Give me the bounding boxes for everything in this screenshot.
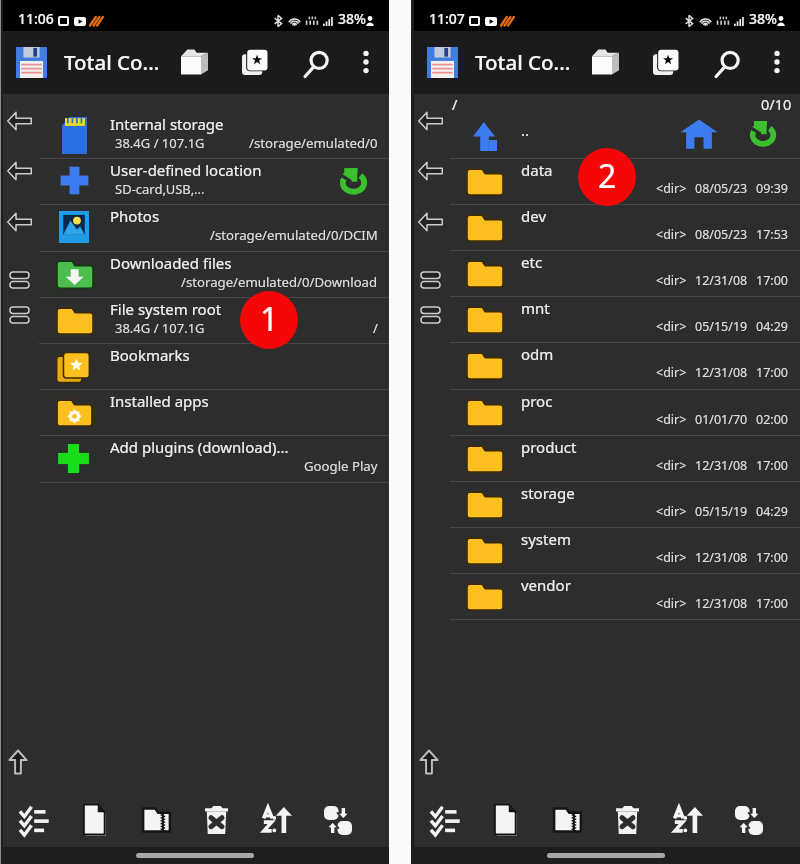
staticText: Total Co...: [64, 48, 160, 76]
button[interactable]: [411, 389, 800, 435]
button[interactable]: Open folder: [592, 49, 619, 75]
button[interactable]: Refresh: [748, 118, 778, 148]
staticText: <dir>: [656, 503, 687, 520]
button[interactable]: [411, 112, 800, 158]
button[interactable]: [411, 481, 800, 527]
button[interactable]: Sort: [263, 807, 292, 833]
button[interactable]: Zip: [142, 807, 171, 833]
staticText: proc: [521, 391, 553, 411]
button[interactable]: Zip: [553, 807, 582, 833]
staticText: 08/05/23: [695, 226, 748, 243]
button[interactable]: Search: [714, 51, 740, 77]
staticText: Add plugins (download)...: [110, 437, 289, 457]
button[interactable]: Search: [303, 51, 329, 77]
button[interactable]: Move: [324, 806, 352, 835]
button[interactable]: [411, 342, 800, 388]
staticText: 1: [260, 297, 279, 341]
staticText: User-defined location: [110, 160, 262, 180]
staticText: 17:00: [756, 364, 788, 381]
button[interactable]: New file: [494, 804, 517, 836]
button[interactable]: [411, 573, 800, 619]
button[interactable]: [0, 112, 389, 158]
staticText: 17:53: [756, 226, 788, 243]
button[interactable]: Refresh: [338, 165, 369, 196]
staticText: 12/31/08: [695, 364, 748, 381]
staticText: Installed apps: [110, 391, 209, 411]
staticText: Bookmarks: [110, 345, 190, 365]
button[interactable]: [411, 527, 800, 573]
staticText: 05/15/19: [695, 503, 748, 520]
button[interactable]: [411, 158, 800, 204]
staticText: Internal storage: [110, 114, 224, 134]
staticText: 38%: [338, 9, 366, 28]
staticText: <dir>: [656, 226, 687, 243]
staticText: ..: [521, 120, 530, 140]
staticText: Total Co...: [475, 48, 571, 76]
staticText: 38.4G / 107.1G: [115, 134, 205, 152]
staticText: Google Play: [304, 457, 378, 475]
staticText: 11:06: [18, 9, 54, 28]
staticText: <dir>: [656, 318, 687, 335]
button[interactable]: More options: [771, 51, 783, 73]
staticText: 17:00: [756, 457, 788, 474]
staticText: storage: [521, 483, 575, 503]
staticText: SD-card,USB,...: [115, 180, 205, 198]
staticText: 08/05/23: [695, 180, 748, 197]
staticText: dev: [521, 206, 547, 226]
staticText: odm: [521, 344, 554, 364]
staticText: 17:00: [756, 549, 788, 566]
staticText: 12/31/08: [695, 549, 748, 566]
button[interactable]: [411, 296, 800, 342]
staticText: Downloaded files: [110, 253, 232, 273]
button[interactable]: New file: [83, 804, 106, 836]
staticText: 2: [598, 154, 617, 198]
staticText: 12/31/08: [695, 272, 748, 289]
button[interactable]: Delete: [205, 806, 228, 834]
button[interactable]: [0, 435, 389, 481]
button[interactable]: Bookmarks: [653, 49, 679, 75]
staticText: 04:29: [756, 503, 788, 520]
staticText: <dir>: [656, 595, 687, 612]
button[interactable]: [0, 158, 389, 204]
staticText: etc: [521, 252, 543, 272]
staticText: 01/01/70: [695, 411, 748, 428]
button[interactable]: [0, 343, 389, 389]
staticText: vendor: [521, 575, 571, 595]
button[interactable]: [411, 250, 800, 296]
button[interactable]: Open folder: [181, 49, 208, 75]
staticText: /storage/emulated/0/Download: [181, 273, 378, 291]
button[interactable]: [0, 297, 389, 343]
staticText: mnt: [521, 298, 550, 318]
staticText: <dir>: [656, 272, 687, 289]
staticText: <dir>: [656, 411, 687, 428]
staticText: 05/15/19: [695, 318, 748, 335]
button[interactable]: Home: [680, 118, 718, 149]
button[interactable]: [0, 389, 389, 435]
staticText: <dir>: [656, 364, 687, 381]
staticText: /storage/emulated/0/DCIM: [210, 226, 378, 244]
button[interactable]: Bookmarks: [242, 49, 268, 75]
staticText: <dir>: [656, 457, 687, 474]
button[interactable]: Delete: [616, 806, 639, 834]
button[interactable]: [411, 204, 800, 250]
staticText: 11:07: [429, 9, 465, 28]
staticText: 38%: [749, 9, 777, 28]
staticText: 0/10: [761, 94, 792, 114]
button[interactable]: More options: [360, 51, 372, 73]
button[interactable]: Select all: [432, 806, 460, 834]
button[interactable]: [0, 251, 389, 297]
staticText: data: [521, 160, 553, 180]
staticText: 12/31/08: [695, 457, 748, 474]
staticText: File system root: [110, 299, 222, 319]
staticText: /: [452, 94, 458, 114]
staticText: 12/31/08: [695, 595, 748, 612]
staticText: 17:00: [756, 595, 788, 612]
staticText: 38.4G / 107.1G: [115, 319, 205, 337]
button[interactable]: Move: [735, 806, 763, 835]
staticText: <dir>: [656, 549, 687, 566]
button[interactable]: Sort: [674, 807, 703, 833]
staticText: 17:00: [756, 272, 788, 289]
button[interactable]: Select all: [21, 806, 49, 834]
button[interactable]: [0, 204, 389, 250]
button[interactable]: [411, 435, 800, 481]
